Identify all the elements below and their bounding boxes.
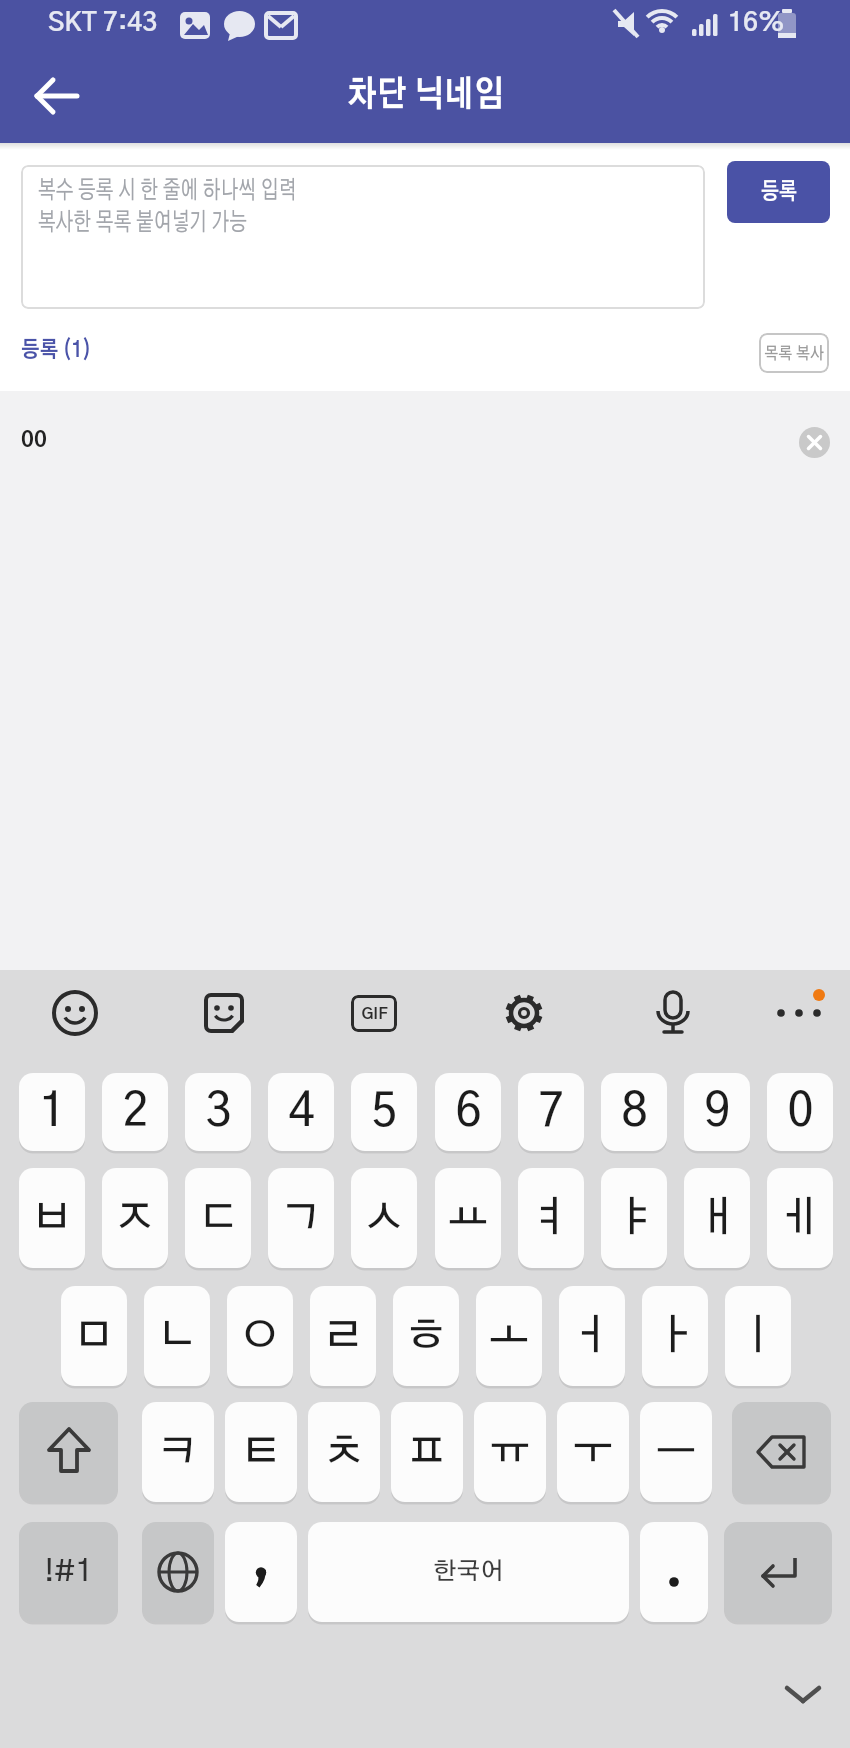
button[interactable]: 8 [601,1073,667,1151]
button[interactable]: 2 [102,1073,168,1151]
button[interactable] [648,988,698,1038]
staticText: 차단 닉네임 [347,78,504,113]
staticText: ㅏ [654,1315,696,1357]
button[interactable]: 4 [268,1073,334,1151]
staticText: 목록 복사 [764,345,824,362]
button[interactable]: ㅓ [559,1286,625,1386]
staticText: 0 [787,1089,814,1135]
staticText: ㅌ [240,1431,282,1473]
staticText: GIF [361,1006,388,1022]
button[interactable]: ㅑ [601,1168,667,1268]
button[interactable]: ㄹ [310,1286,376,1386]
button[interactable]: ㅈ [102,1168,168,1268]
staticText: 7 [538,1089,565,1135]
button[interactable] [799,427,830,458]
button[interactable] [225,1522,297,1622]
staticText: 16% [728,10,785,36]
button[interactable]: ㅎ [393,1286,459,1386]
button[interactable]: ㄱ [268,1168,334,1268]
button[interactable]: GIF [351,995,397,1032]
staticText: 한국어 [433,1560,504,1584]
button[interactable]: 5 [351,1073,417,1151]
button[interactable]: ㅣ [725,1286,791,1386]
staticText: ㅇ [239,1315,281,1357]
button[interactable]: ㅅ [351,1168,417,1268]
staticText: ㅡ [655,1431,697,1473]
button[interactable]: ㅗ [476,1286,542,1386]
button[interactable]: ㅇ [227,1286,293,1386]
button[interactable]: ㅜ [557,1402,629,1502]
staticText: 2 [122,1089,149,1135]
staticText: ㄱ [280,1197,322,1239]
staticText: !#1 [44,1557,93,1587]
staticText: 9 [704,1089,731,1135]
button[interactable] [19,1402,118,1502]
button[interactable] [770,988,830,1038]
button[interactable]: ㅊ [308,1402,380,1502]
button[interactable]: ㅔ [767,1168,833,1268]
staticText: 00 [21,429,47,451]
button[interactable]: ㅛ [435,1168,501,1268]
button[interactable]: ㅌ [225,1402,297,1502]
button[interactable]: ㅍ [391,1402,463,1502]
button[interactable]: 목록 복사 [759,333,829,373]
staticText: ㅔ [779,1197,821,1239]
button[interactable]: ㄷ [185,1168,251,1268]
button[interactable]: 1 [19,1073,85,1151]
button[interactable]: ㄴ [144,1286,210,1386]
staticText: ㅐ [696,1197,738,1239]
button[interactable]: ㅕ [518,1168,584,1268]
button[interactable]: 9 [684,1073,750,1151]
button[interactable]: 한국어 [308,1522,629,1622]
staticText: ㄴ [156,1315,198,1357]
button[interactable] [50,988,100,1038]
button[interactable] [142,1522,214,1622]
staticText: ㅕ [530,1197,572,1239]
button[interactable]: ㅠ [474,1402,546,1502]
button[interactable]: ㅁ [61,1286,127,1386]
staticText: ㅂ [31,1197,73,1239]
button[interactable]: ㅋ [142,1402,214,1502]
staticText: ㅑ [613,1197,655,1239]
button[interactable]: ㅡ [640,1402,712,1502]
staticText: ㅊ [323,1431,365,1473]
staticText: 6 [455,1089,482,1135]
button[interactable]: 3 [185,1073,251,1151]
button[interactable] [770,1665,836,1725]
staticText: 8 [621,1089,648,1135]
button[interactable]: !#1 [19,1522,118,1622]
staticText: ㅛ [447,1197,489,1239]
button[interactable] [640,1522,708,1622]
button[interactable] [199,988,249,1038]
button[interactable]: ㅂ [19,1168,85,1268]
staticText: ㅜ [572,1431,614,1473]
button[interactable]: ㅐ [684,1168,750,1268]
button[interactable] [724,1522,832,1622]
staticText: ㅍ [406,1431,448,1473]
button[interactable] [20,60,94,132]
staticText: ㅠ [489,1431,531,1473]
staticText: SKT 7:43 [48,10,158,36]
staticText: ㅣ [737,1315,779,1357]
staticText: ㅋ [157,1431,199,1473]
button[interactable]: 6 [435,1073,501,1151]
staticText: ㅅ [363,1197,405,1239]
button[interactable]: 0 [767,1073,833,1151]
staticText: ㄹ [322,1315,364,1357]
staticText: ㅎ [405,1315,447,1357]
staticText: ㅓ [571,1315,613,1357]
staticText: 3 [205,1089,232,1135]
button[interactable]: 복수 등록 시 한 줄에 하나씩 입력 복사한 목록 붙여넣기 가능 [21,165,705,309]
button[interactable]: 7 [518,1073,584,1151]
staticText: 4 [288,1089,315,1135]
staticText: 1 [39,1089,66,1135]
button[interactable]: ㅏ [642,1286,708,1386]
button[interactable]: 등록 [727,161,830,223]
button[interactable] [499,988,549,1038]
staticText: 등록 [761,181,797,204]
staticText: 등록 (1) [21,339,92,361]
staticText: 복수 등록 시 한 줄에 하나씩 입력 복사한 목록 붙여넣기 가능 [38,178,296,235]
staticText: ㅗ [488,1315,530,1357]
button[interactable] [732,1402,831,1502]
staticText: ㅈ [114,1197,156,1239]
